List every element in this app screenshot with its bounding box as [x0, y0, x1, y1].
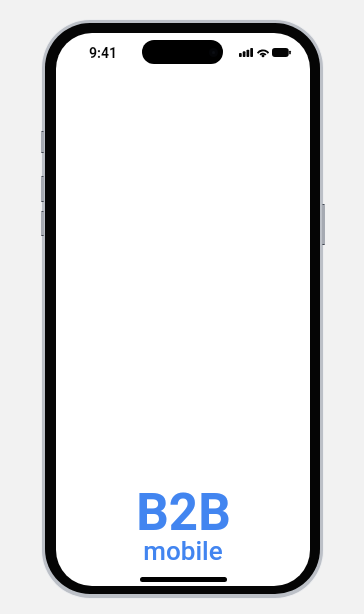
- button[interactable]: B2B: [56, 483, 310, 543]
- staticText: 9:41: [89, 45, 118, 61]
- staticText: mobile: [143, 536, 223, 566]
- staticText: B2B: [136, 483, 231, 543]
